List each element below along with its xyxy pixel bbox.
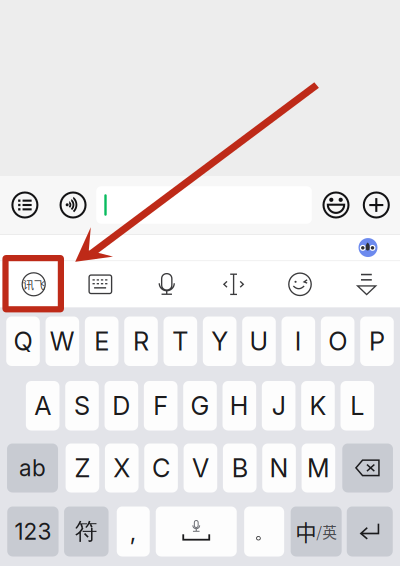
button[interactable]: iFlytek input (0, 261, 67, 307)
button[interactable]: I (281, 316, 315, 366)
staticText: B (232, 453, 248, 483)
staticText: K (309, 390, 326, 421)
button[interactable]: T (163, 316, 197, 366)
button[interactable]: R (124, 316, 158, 366)
button[interactable]: V (184, 443, 217, 492)
staticText: C (152, 453, 170, 483)
button[interactable]: O (321, 316, 354, 366)
staticText: 讯飞 (23, 276, 45, 292)
button[interactable]: Space (156, 506, 237, 556)
staticText: J (272, 390, 286, 421)
staticText: E (94, 326, 109, 357)
button[interactable]: K (301, 381, 335, 430)
button[interactable]: Y (203, 316, 236, 366)
button[interactable]: U (242, 316, 276, 366)
button[interactable]: Delete (342, 443, 393, 492)
button[interactable]: More (360, 182, 392, 228)
staticText: W (50, 326, 75, 357)
button[interactable]: C (144, 443, 178, 492)
staticText: 符 (75, 517, 98, 546)
button[interactable]: B (223, 443, 256, 492)
staticText: M (307, 453, 330, 483)
button[interactable]: ab (7, 443, 58, 492)
button[interactable]: Hold to talk (50, 182, 96, 228)
staticText: D (112, 390, 130, 421)
button[interactable]: M (302, 443, 335, 492)
staticText: , (130, 517, 137, 546)
button[interactable]: 123 (7, 506, 58, 556)
staticText: I (295, 326, 302, 357)
button[interactable]: 。 (244, 506, 284, 556)
button[interactable]: D (104, 381, 138, 430)
button[interactable]: Q (6, 316, 40, 366)
staticText: F (153, 390, 168, 421)
button[interactable]: L (340, 381, 374, 430)
button[interactable]: Stickers (267, 261, 333, 307)
button[interactable]: Voice input (133, 261, 200, 307)
button[interactable]: H (222, 381, 256, 430)
button[interactable]: Chinese English (291, 506, 342, 556)
button[interactable]: E (85, 316, 118, 366)
staticText: R (133, 326, 149, 357)
button[interactable]: Return (347, 506, 393, 556)
staticText: S (74, 390, 90, 421)
staticText: Y (211, 326, 228, 357)
button[interactable]: X (105, 443, 138, 492)
staticText: H (230, 390, 249, 421)
staticText: U (249, 326, 268, 357)
staticText: 中 (295, 516, 316, 547)
button[interactable]: , (117, 506, 150, 556)
button[interactable]: Input options (0, 182, 50, 228)
staticText: L (350, 390, 364, 421)
staticText: 。 (254, 519, 274, 544)
button[interactable]: Keyboard layout (67, 261, 133, 307)
button[interactable]: Emoji (312, 182, 360, 228)
staticText: ab (19, 454, 46, 482)
button[interactable]: 符 (64, 506, 108, 556)
staticText: Z (74, 453, 90, 483)
button[interactable]: P (360, 316, 394, 366)
button[interactable]: S (65, 381, 99, 430)
staticText: N (270, 453, 289, 483)
staticText: /英 (316, 521, 337, 542)
staticText: G (190, 390, 209, 421)
button[interactable]: Smart assistant (355, 236, 381, 260)
button[interactable]: A (26, 381, 59, 430)
button[interactable]: N (262, 443, 296, 492)
button[interactable]: G (183, 381, 217, 430)
button[interactable]: Hide keyboard (333, 261, 400, 307)
button[interactable]: Move cursor (200, 261, 267, 307)
staticText: V (192, 453, 209, 483)
staticText: A (34, 390, 51, 421)
button[interactable]: Z (66, 443, 99, 492)
staticText: O (328, 326, 347, 357)
button[interactable]: W (45, 316, 79, 366)
staticText: Q (13, 326, 32, 357)
staticText: P (369, 326, 385, 357)
button[interactable]: J (262, 381, 295, 430)
button[interactable]: F (144, 381, 177, 430)
staticText: 123 (14, 518, 51, 545)
staticText: T (172, 326, 188, 357)
staticText: X (113, 453, 130, 483)
